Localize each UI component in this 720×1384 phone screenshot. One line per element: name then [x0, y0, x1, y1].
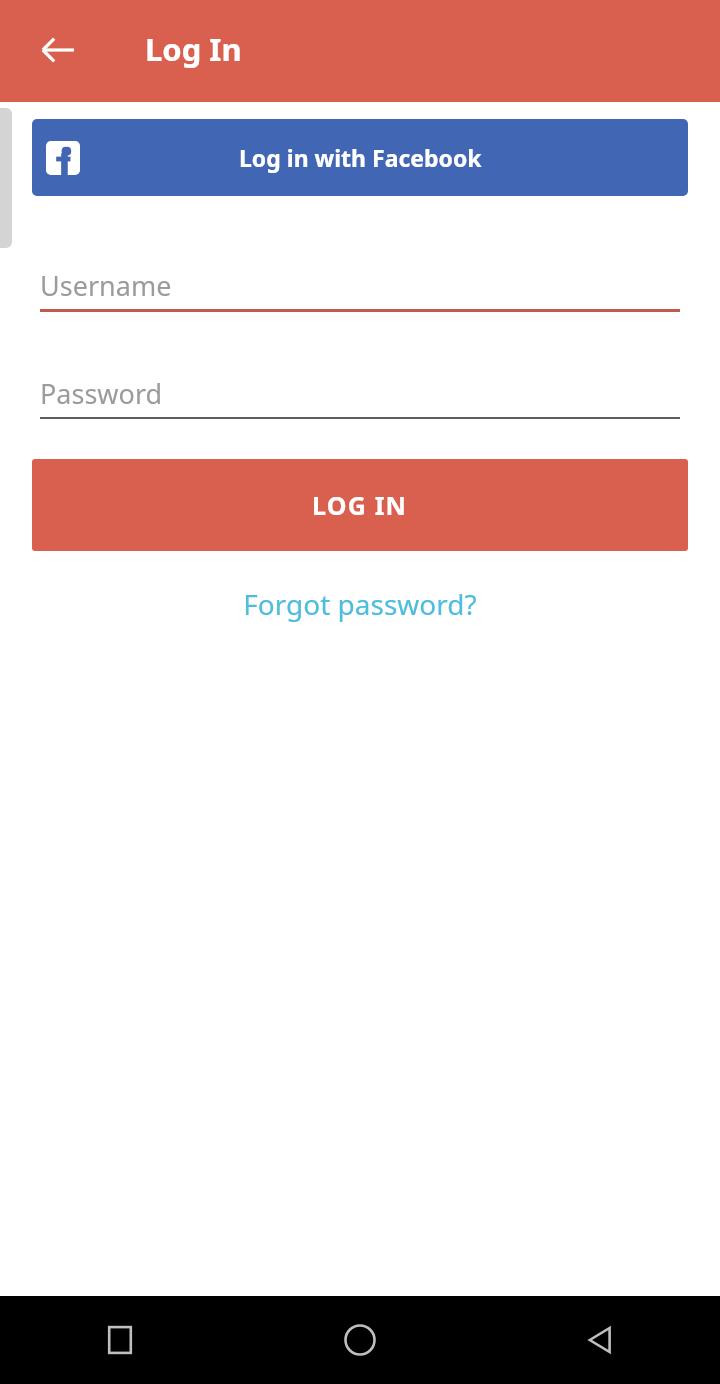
button[interactable]: Back	[480, 1296, 720, 1384]
button[interactable]: Password	[40, 369, 680, 417]
button[interactable]: Home	[240, 1296, 480, 1384]
button[interactable]: Log in with Facebook	[32, 119, 688, 196]
staticText: Password	[40, 375, 163, 412]
button[interactable]: Username	[40, 261, 680, 309]
staticText: Forgot password?	[243, 585, 477, 623]
staticText: Username	[40, 267, 172, 304]
button[interactable]: Back	[22, 14, 94, 86]
staticText: Log in with Facebook	[239, 142, 482, 173]
button[interactable]: Recents	[0, 1296, 240, 1384]
button[interactable]: LOG IN	[32, 459, 688, 551]
button[interactable]: Forgot password?	[219, 577, 501, 631]
staticText: LOG IN	[312, 488, 408, 522]
staticText: Log In	[145, 28, 242, 70]
